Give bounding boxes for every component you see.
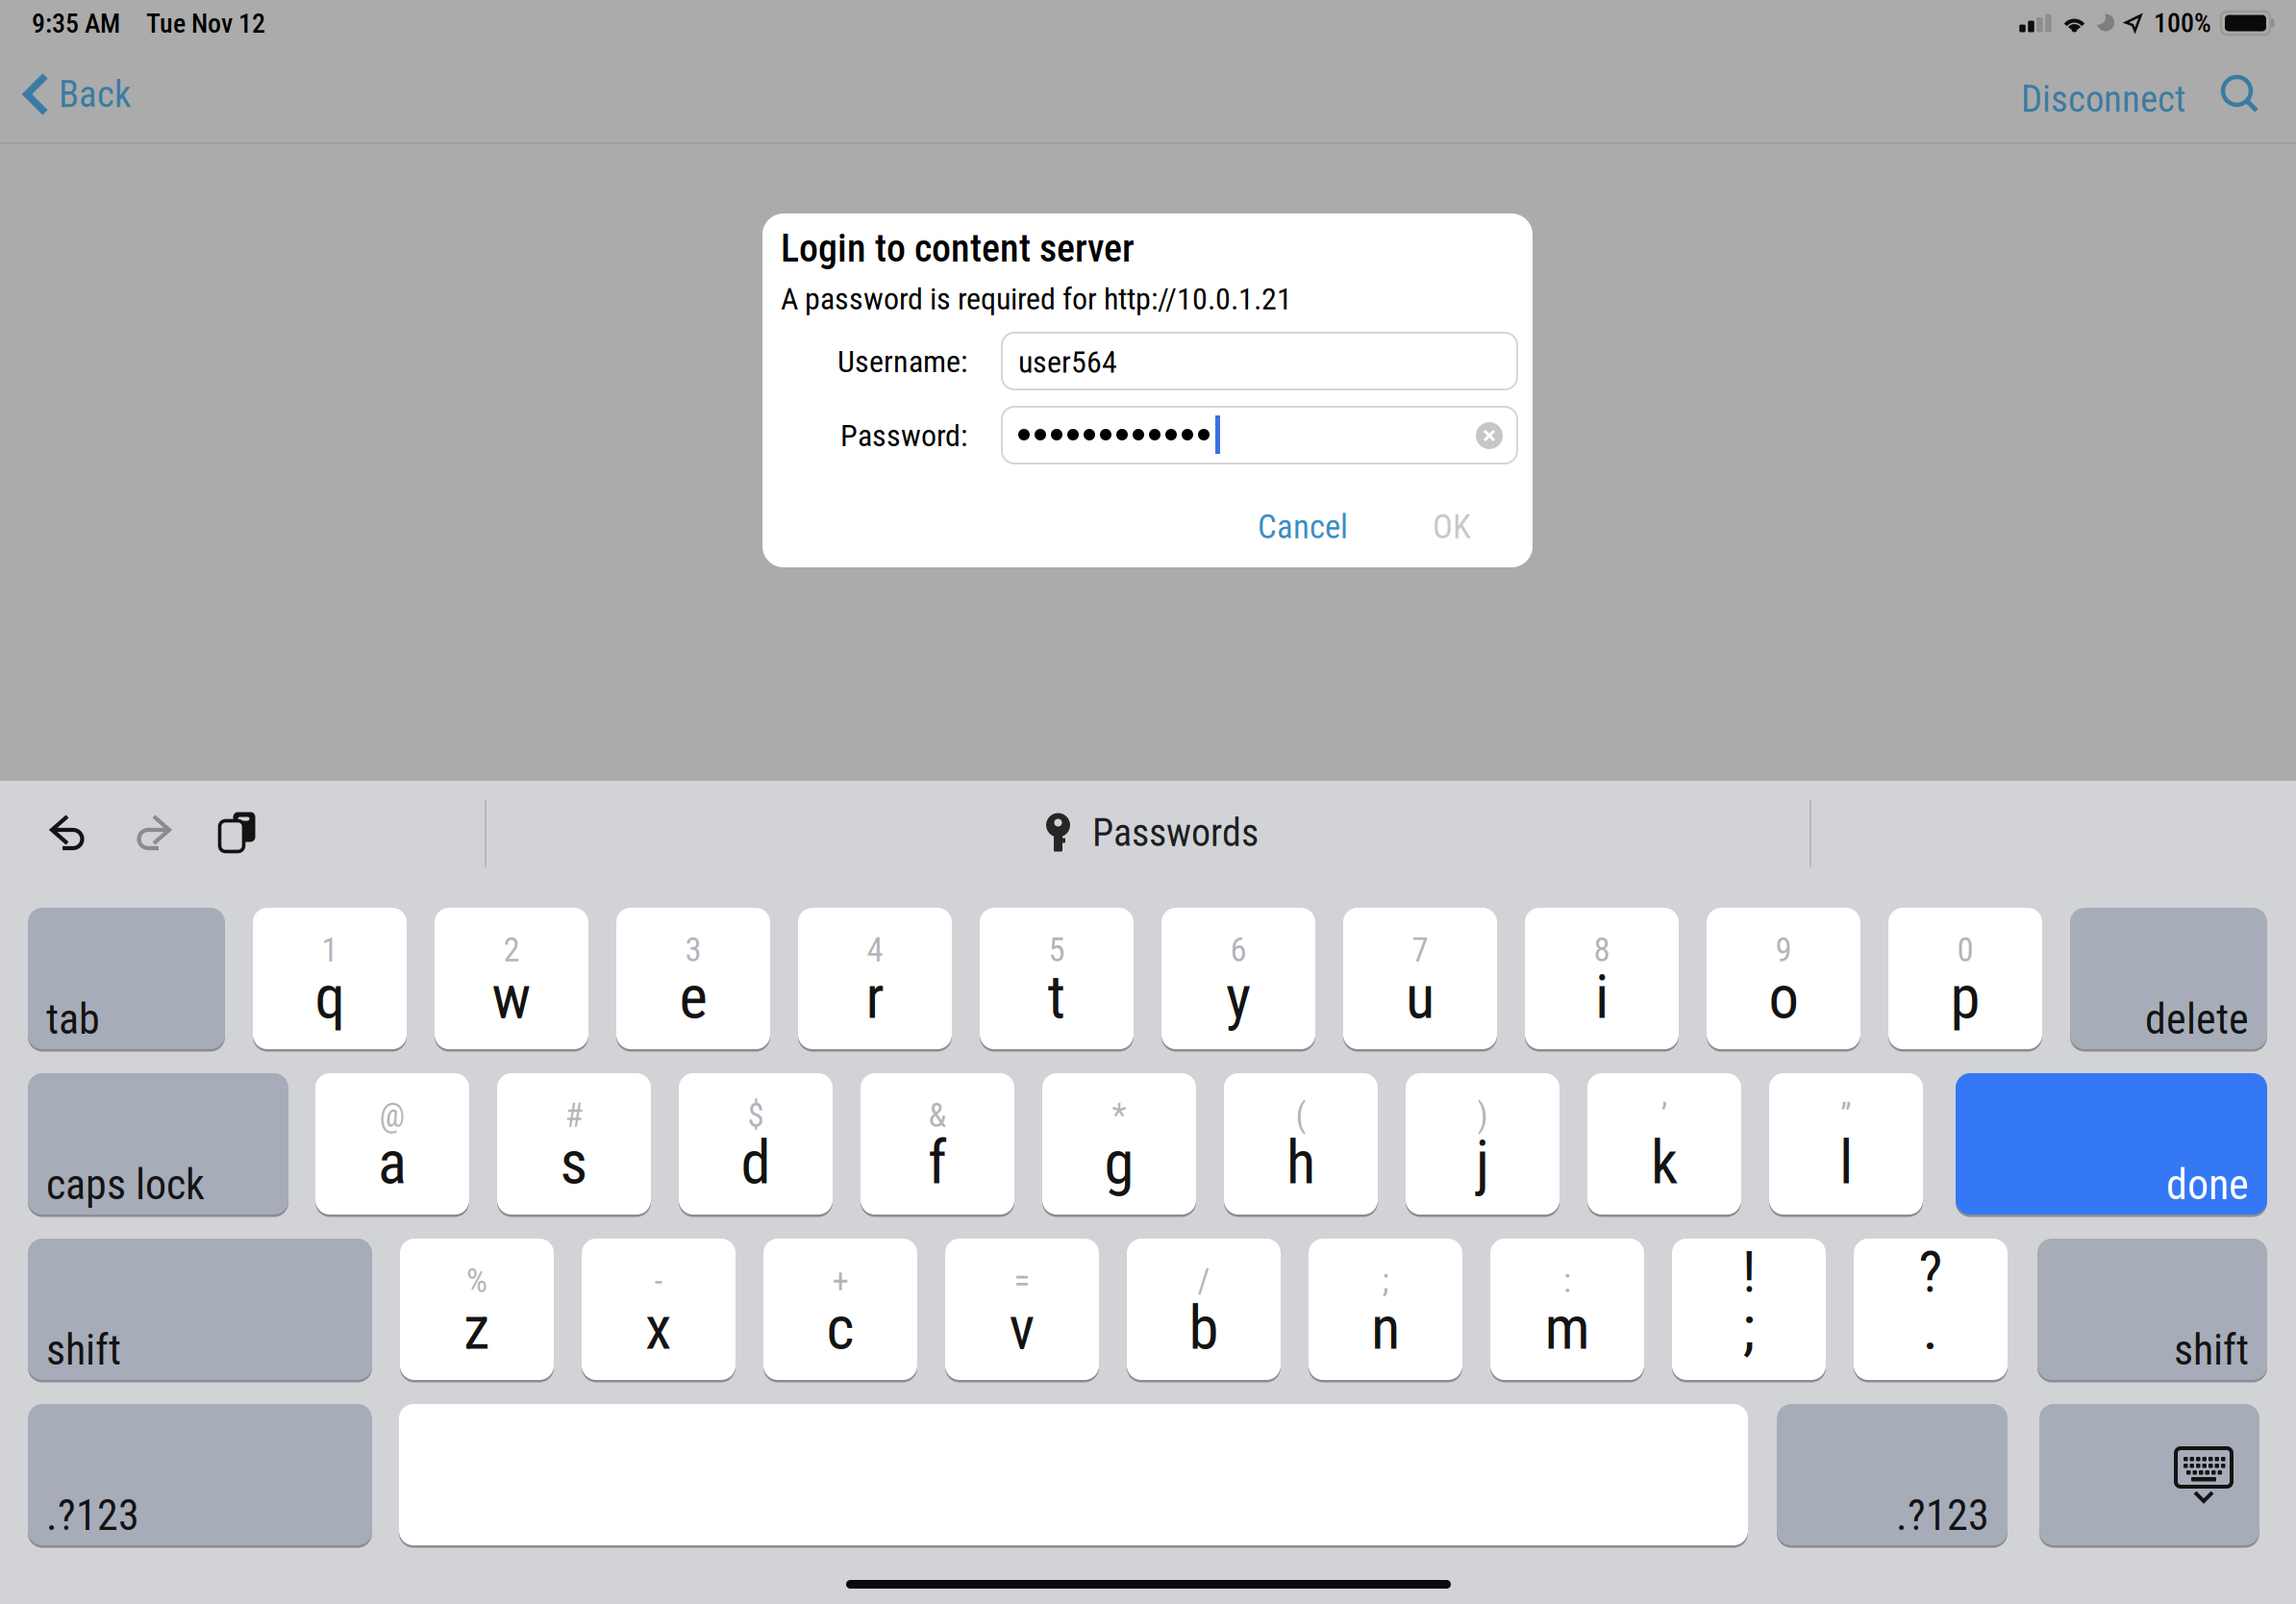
staticText: x [645, 1293, 672, 1363]
button[interactable]: ” [1769, 1073, 1923, 1215]
button[interactable]: 5 [980, 908, 1134, 1049]
staticText: 3 [685, 931, 701, 970]
staticText: .?123 [1896, 1491, 1989, 1540]
button[interactable]: 0 [1888, 908, 2042, 1049]
staticText: 0 [1957, 931, 1973, 970]
staticText: 5 [1048, 931, 1065, 970]
staticText: 1 [322, 931, 338, 970]
button[interactable]: Clear password [1463, 410, 1515, 462]
button[interactable]: 4 [798, 908, 952, 1049]
staticText: 100% [2154, 7, 2211, 39]
button[interactable]: Redo [120, 799, 187, 866]
staticText: Password: [840, 418, 967, 454]
button[interactable]: + [763, 1239, 917, 1380]
staticText: Back [59, 72, 131, 116]
staticText: ; [1743, 1293, 1755, 1363]
staticText: user564 [1018, 344, 1117, 380]
staticText: 9 [1775, 931, 1792, 970]
staticText: z [463, 1293, 490, 1363]
button[interactable]: # [497, 1073, 651, 1215]
button[interactable]: 2 [435, 908, 588, 1049]
button[interactable]: done [1956, 1073, 2267, 1215]
staticText: b [1189, 1293, 1219, 1363]
staticText: ) [1477, 1096, 1488, 1135]
staticText: Cancel [1258, 507, 1348, 546]
button[interactable]: ( [1224, 1073, 1378, 1215]
staticText: t [1048, 962, 1066, 1033]
button[interactable]: caps lock [28, 1073, 288, 1215]
staticText: p [1950, 962, 1980, 1033]
button[interactable]: Disconnect [2004, 56, 2203, 142]
staticText: i [1595, 962, 1609, 1033]
staticText: shift [2174, 1325, 2249, 1375]
button[interactable]: 1 [253, 908, 407, 1049]
button[interactable]: = [945, 1239, 1099, 1380]
button[interactable]: 6 [1161, 908, 1315, 1049]
button[interactable]: Paste [205, 798, 272, 865]
button[interactable]: Username [1002, 333, 1517, 389]
button[interactable]: .?123 [28, 1404, 372, 1545]
button[interactable]: ; [1309, 1239, 1462, 1380]
staticText: 2 [503, 931, 520, 970]
staticText: # [565, 1096, 583, 1135]
staticText: c [826, 1293, 854, 1363]
button[interactable]: & [861, 1073, 1014, 1215]
button[interactable]: tab [28, 908, 225, 1049]
staticText: n [1371, 1293, 1400, 1363]
button[interactable]: Password [1002, 407, 1517, 464]
button[interactable]: : [1490, 1239, 1644, 1380]
staticText: q [315, 962, 345, 1033]
button[interactable]: 9 [1707, 908, 1860, 1049]
button[interactable]: Hide keyboard [2039, 1404, 2259, 1545]
button[interactable]: / [1127, 1239, 1281, 1380]
staticText: : [1563, 1261, 1571, 1300]
button[interactable]: 8 [1525, 908, 1679, 1049]
button[interactable]: Cancel [1235, 497, 1371, 557]
staticText: . [1922, 1293, 1939, 1363]
staticText: @ [379, 1096, 405, 1135]
staticText: tab [46, 995, 100, 1044]
staticText: Disconnect [2021, 77, 2185, 121]
staticText: - [654, 1261, 663, 1300]
button[interactable]: 3 [616, 908, 770, 1049]
staticText: Tue Nov 12 [146, 8, 265, 39]
button[interactable]: 7 [1343, 908, 1497, 1049]
staticText: k [1651, 1127, 1678, 1198]
button[interactable]: Search [2196, 57, 2286, 132]
staticText: d [741, 1127, 771, 1198]
button[interactable]: .?123 [1777, 1404, 2008, 1545]
button[interactable]: delete [2070, 908, 2267, 1049]
staticText: u [1406, 962, 1435, 1033]
staticText: ’ [1661, 1096, 1668, 1135]
staticText: s [560, 1127, 588, 1198]
button[interactable]: Undo [34, 799, 101, 866]
button[interactable]: ? [1854, 1239, 2008, 1380]
staticText: Login to content server [781, 226, 1135, 271]
staticText: & [928, 1096, 947, 1135]
staticText: Passwords [1092, 810, 1259, 855]
button[interactable]: OK [1410, 497, 1494, 557]
staticText: y [1226, 962, 1251, 1033]
button[interactable]: shift [2037, 1239, 2267, 1380]
button[interactable]: * [1042, 1073, 1196, 1215]
staticText: .?123 [46, 1491, 139, 1540]
staticText: caps lock [46, 1160, 205, 1210]
button[interactable]: Back [0, 54, 150, 135]
staticText: 6 [1230, 931, 1247, 970]
staticText: ? [1919, 1239, 1943, 1305]
staticText: 4 [867, 931, 883, 970]
button[interactable]: - [582, 1239, 736, 1380]
button[interactable]: Passwords [1046, 801, 1259, 865]
button[interactable]: ) [1406, 1073, 1560, 1215]
button[interactable]: ! [1672, 1239, 1826, 1380]
button[interactable]: $ [679, 1073, 833, 1215]
staticText: g [1104, 1127, 1134, 1198]
staticText: + [832, 1261, 849, 1300]
button[interactable]: ’ [1587, 1073, 1741, 1215]
staticText: f [928, 1127, 947, 1198]
button[interactable]: @ [315, 1073, 469, 1215]
staticText: o [1769, 962, 1798, 1033]
button[interactable]: % [400, 1239, 554, 1380]
button[interactable]: shift [28, 1239, 372, 1380]
